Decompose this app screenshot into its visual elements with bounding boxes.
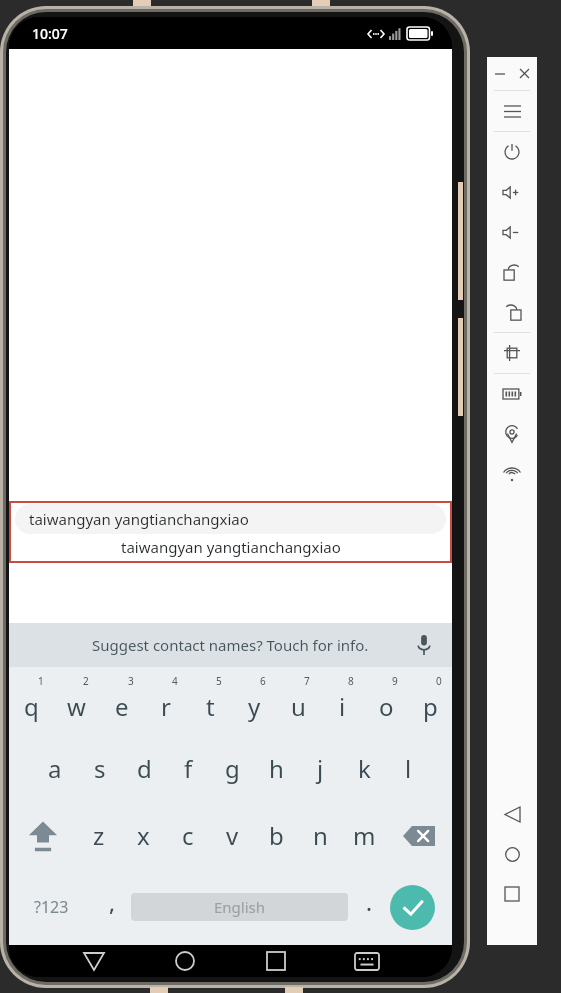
button[interactable]: Power [487,132,537,172]
staticText: c [182,819,194,852]
staticText: 10:07 [32,24,68,43]
button[interactable]: English [131,893,348,921]
staticText: j [317,752,324,785]
button[interactable]: Home [487,834,537,874]
button[interactable]: Volume down [487,212,537,252]
staticText: e [115,690,129,723]
staticText: English [214,897,266,917]
staticText: m [353,819,376,852]
button[interactable]: Shift [9,802,76,869]
staticText: p [423,690,438,723]
button[interactable]: 3 [99,667,144,735]
staticText: 0 [436,674,442,688]
button[interactable]: Wi-Fi [487,454,537,494]
staticText: 6 [260,674,266,688]
button[interactable]: Volume up [487,172,537,212]
staticText: taiwangyan yangtianchangxiao [121,537,341,557]
button[interactable]: 1 [9,667,54,735]
staticText: x [137,819,150,852]
button[interactable]: 4 [144,667,188,735]
button[interactable]: 0 [408,667,452,735]
button[interactable]: Screenshot [487,333,537,373]
button[interactable]: n [298,802,342,869]
staticText: h [269,752,284,785]
staticText: b [269,819,284,852]
button[interactable]: c [166,802,210,869]
staticText: s [94,752,106,785]
button[interactable]: Back [49,945,139,977]
button[interactable]: k [342,735,386,802]
button[interactable]: Rotate left [487,292,537,332]
button[interactable]: x [121,802,166,869]
staticText: z [93,819,105,852]
button[interactable]: Home [139,945,230,977]
button[interactable]: j [298,735,342,802]
staticText: u [291,690,306,723]
button[interactable]: , [93,869,131,945]
button[interactable]: d [122,735,166,802]
staticText: w [67,690,86,723]
button[interactable]: Location [487,414,537,454]
staticText: y [248,690,261,723]
button[interactable]: Minimize [487,57,512,90]
button[interactable]: Menu [487,91,537,131]
staticText: t [206,690,215,723]
button[interactable]: Battery [487,374,537,414]
staticText: q [24,690,39,723]
button[interactable]: 2 [54,667,99,735]
button[interactable]: Rotate right [487,252,537,292]
staticText: 9 [392,674,398,688]
staticText: i [339,690,346,723]
button[interactable]: taiwangyan yangtianchangxiao [15,504,446,534]
button[interactable]: Recents [230,945,321,977]
button[interactable]: 8 [320,667,364,735]
button[interactable]: g [210,735,254,802]
staticText: f [184,752,193,785]
staticText: n [313,819,328,852]
button[interactable]: Overview [487,874,537,914]
staticText: 1 [38,674,44,688]
staticText: 2 [83,674,89,688]
staticText: , [109,887,116,917]
button[interactable]: Backspace [386,802,452,869]
staticText: . [366,887,372,917]
button[interactable]: 7 [276,667,320,735]
staticText: v [226,819,239,852]
button[interactable]: Voice input [407,628,441,662]
button[interactable]: Keyboard [321,945,412,977]
button[interactable]: Back [487,794,537,834]
staticText: taiwangyan yangtianchangxiao [29,509,249,529]
staticText: d [137,752,152,785]
staticText: l [405,752,412,785]
staticText: a [48,752,62,785]
button[interactable]: . [348,869,390,945]
staticText: ?123 [34,896,69,918]
button[interactable]: Suggest contact names? Touch for info. [9,623,452,667]
staticText: 4 [172,674,178,688]
button[interactable]: h [254,735,298,802]
button[interactable]: a [32,735,77,802]
staticText: 5 [216,674,222,688]
staticText: 7 [304,674,310,688]
button[interactable]: m [342,802,386,869]
button[interactable]: l [386,735,430,802]
button[interactable]: s [77,735,122,802]
button[interactable]: Close [512,57,537,90]
button[interactable]: 9 [364,667,408,735]
staticText: r [161,690,171,723]
button[interactable]: 5 [188,667,232,735]
button[interactable]: b [254,802,298,869]
button[interactable]: z [76,802,121,869]
staticText: 3 [128,674,134,688]
button[interactable]: ?123 [9,869,93,945]
staticText: g [225,752,240,785]
button[interactable]: f [166,735,210,802]
staticText: k [358,752,371,785]
button[interactable]: v [210,802,254,869]
staticText: Suggest contact names? Touch for info. [92,635,369,655]
staticText: o [379,690,394,723]
button[interactable]: 6 [232,667,276,735]
button[interactable]: Enter [390,885,435,930]
staticText: 8 [348,674,354,688]
